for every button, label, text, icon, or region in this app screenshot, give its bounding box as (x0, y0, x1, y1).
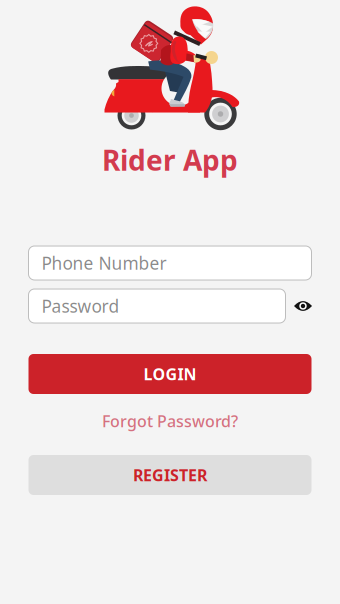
button[interactable]: Forgot Password? (70, 411, 270, 431)
staticText: LOGIN (143, 363, 196, 385)
staticText: REGISTER (133, 464, 207, 486)
button[interactable]: REGISTER (28, 455, 311, 495)
staticText: Phone Number (41, 251, 166, 274)
button[interactable]: LOGIN (28, 354, 311, 394)
staticText: Password (41, 294, 119, 317)
staticText: Forgot Password? (102, 410, 238, 432)
button[interactable]: Show password (289, 289, 317, 323)
staticText: Rider App (102, 141, 238, 179)
